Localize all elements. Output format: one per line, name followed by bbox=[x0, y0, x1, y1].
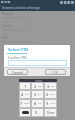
staticText: 6 bbox=[46, 92, 49, 97]
button[interactable]: Done bbox=[45, 109, 56, 116]
staticText: 8 bbox=[34, 101, 37, 106]
staticText: + bbox=[39, 111, 41, 114]
staticText: GHI bbox=[25, 93, 29, 96]
staticText: TUV bbox=[38, 102, 42, 105]
staticText: MNO bbox=[50, 93, 55, 96]
staticText: 3 bbox=[47, 84, 50, 89]
button[interactable]: 3 bbox=[45, 83, 56, 89]
staticText: Pattern bbox=[2, 24, 14, 28]
staticText: PQRS bbox=[24, 102, 30, 105]
button[interactable]: 1 bbox=[20, 83, 30, 89]
button[interactable]: Password bbox=[2, 44, 75, 52]
staticText: 5 bbox=[34, 92, 37, 97]
staticText: 0 bbox=[35, 110, 38, 115]
button[interactable]: 7 bbox=[20, 100, 30, 107]
staticText: Pattern bbox=[2, 12, 14, 16]
button[interactable]: Screen unlock settings bbox=[0, 4, 75, 11]
staticText: OK bbox=[53, 70, 58, 75]
button[interactable]: 0 bbox=[32, 109, 43, 116]
button[interactable]: Symbols bbox=[20, 109, 30, 116]
staticText: Low security bbox=[2, 48, 19, 52]
staticText: ABC bbox=[38, 85, 42, 88]
staticText: Cancel bbox=[12, 70, 23, 75]
staticText: Done bbox=[47, 111, 55, 115]
button[interactable]: 8 bbox=[32, 100, 43, 107]
button[interactable]: OK bbox=[45, 69, 66, 75]
staticText: Screen unlock settings bbox=[2, 5, 40, 10]
staticText: Select PIN bbox=[8, 47, 29, 53]
staticText: WXYZ bbox=[50, 102, 56, 105]
button[interactable]: 9 bbox=[45, 100, 56, 107]
staticText: 1 bbox=[24, 84, 27, 89]
button[interactable]: 5 bbox=[32, 91, 43, 98]
staticText: 9 bbox=[46, 101, 49, 106]
staticText: JKL bbox=[38, 93, 41, 96]
button[interactable]: 4 bbox=[20, 91, 30, 98]
button[interactable]: 6 bbox=[45, 91, 56, 98]
staticText: 4 bbox=[21, 92, 24, 97]
button[interactable]: Cancel bbox=[7, 69, 28, 75]
staticText: Confirm PIN bbox=[8, 56, 27, 60]
staticText: 7 bbox=[20, 101, 23, 106]
staticText: Password bbox=[2, 44, 17, 48]
button[interactable]: 2 bbox=[32, 83, 43, 89]
staticText: DEF bbox=[51, 85, 55, 88]
staticText: PIN bbox=[2, 36, 8, 40]
staticText: 2 bbox=[34, 84, 37, 89]
button[interactable] bbox=[8, 60, 67, 66]
